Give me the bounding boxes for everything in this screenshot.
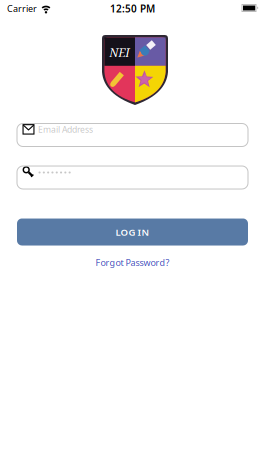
staticText: Email Address xyxy=(38,123,93,135)
staticText: Carrier xyxy=(7,2,37,15)
staticText: Forgot Password? xyxy=(95,256,169,269)
staticText: 12:50 PM xyxy=(110,2,155,15)
button[interactable]: Email Address xyxy=(17,123,248,146)
staticText: NEI xyxy=(109,44,129,61)
staticText: LOG IN xyxy=(115,225,149,239)
button[interactable] xyxy=(17,166,248,189)
button[interactable]: Forgot Password? xyxy=(95,256,169,269)
button[interactable]: LOG IN xyxy=(17,218,248,245)
